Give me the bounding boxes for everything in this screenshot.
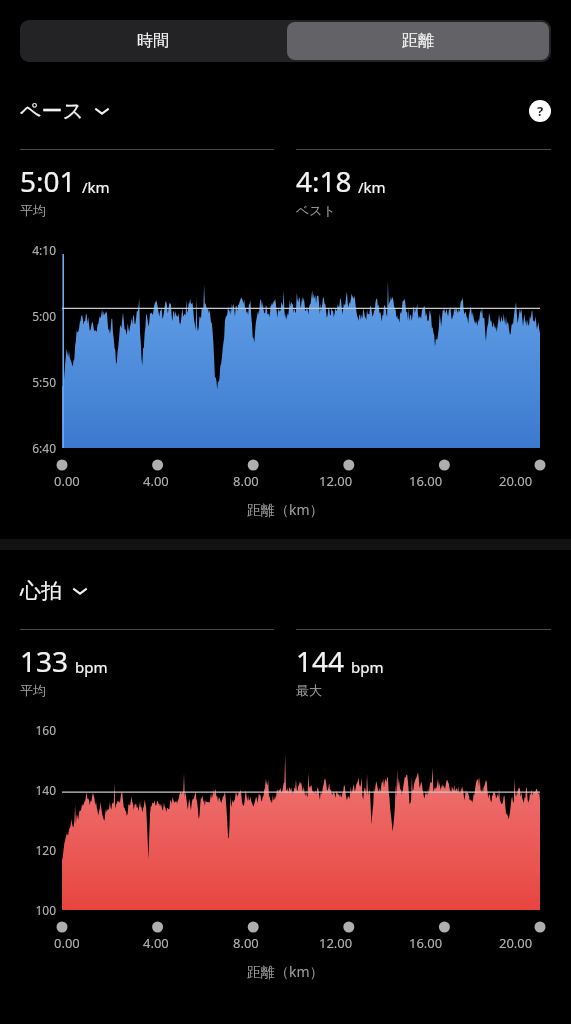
staticText: ペース: [20, 98, 84, 124]
staticText: 距離（km）: [247, 962, 324, 981]
staticText: 4.00: [143, 934, 169, 952]
staticText: 5:01: [20, 162, 76, 200]
staticText: 20.00: [499, 934, 533, 952]
staticText: 平均: [20, 202, 46, 218]
staticText: /km: [358, 177, 386, 197]
staticText: 120: [14, 842, 56, 858]
staticText: 4.00: [143, 472, 169, 490]
staticText: 4:18: [296, 162, 352, 200]
button[interactable]: Help: [527, 98, 553, 124]
staticText: 4:10: [14, 242, 56, 258]
staticText: 最大: [296, 682, 322, 698]
staticText: 0.00: [54, 472, 80, 490]
staticText: 6:40: [14, 440, 56, 456]
staticText: 距離: [402, 31, 434, 51]
button[interactable]: 時間: [20, 20, 285, 62]
staticText: 16.00: [409, 472, 443, 490]
staticText: bpm: [351, 657, 384, 677]
staticText: 20.00: [499, 472, 533, 490]
staticText: 12.00: [319, 934, 353, 952]
staticText: 心拍: [20, 578, 62, 604]
staticText: 8.00: [233, 472, 259, 490]
staticText: 16.00: [409, 934, 443, 952]
staticText: 133: [20, 642, 69, 680]
staticText: ?: [537, 102, 544, 120]
staticText: ベスト: [296, 202, 336, 218]
staticText: 平均: [20, 682, 46, 698]
staticText: 140: [14, 782, 56, 798]
staticText: /km: [82, 177, 110, 197]
staticText: 5:00: [14, 308, 56, 324]
staticText: 距離（km）: [247, 500, 324, 519]
staticText: 5:50: [14, 374, 56, 390]
staticText: 0.00: [54, 934, 80, 952]
staticText: 160: [14, 722, 56, 738]
staticText: 8.00: [233, 934, 259, 952]
button[interactable]: 距離: [287, 22, 549, 60]
button[interactable]: 心拍: [20, 574, 88, 608]
button[interactable]: ペース: [20, 94, 110, 128]
staticText: 144: [296, 642, 345, 680]
staticText: bpm: [75, 657, 108, 677]
staticText: 12.00: [319, 472, 353, 490]
staticText: 100: [14, 902, 56, 918]
staticText: 時間: [137, 31, 169, 51]
